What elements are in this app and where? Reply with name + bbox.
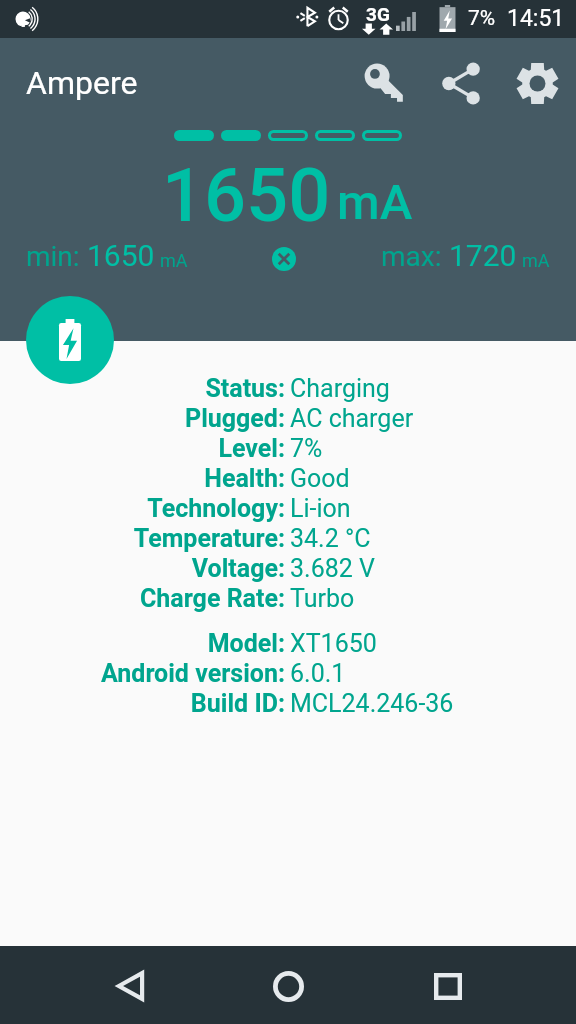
staticText: Ampere	[26, 64, 138, 102]
staticText: 7%	[468, 6, 496, 31]
staticText: Charging	[290, 374, 390, 403]
staticText: 14:51	[507, 5, 565, 32]
staticText: 3G	[366, 3, 390, 25]
button[interactable]: Recents	[408, 958, 488, 1014]
staticText: mA	[160, 250, 188, 271]
staticText: Temperature:	[133, 524, 285, 553]
staticText: 7%	[290, 434, 323, 463]
staticText: Charge Rate:	[139, 584, 285, 613]
staticText: AC charger	[290, 404, 414, 433]
staticText: Level:	[218, 434, 285, 463]
button[interactable]: Home	[248, 958, 328, 1014]
staticText: 34.2 °C	[290, 524, 371, 553]
staticText: Good	[290, 464, 350, 493]
staticText: mA	[522, 250, 550, 271]
staticText: Model:	[207, 629, 285, 658]
staticText: max:	[381, 240, 449, 273]
staticText: Li-ion	[290, 494, 351, 523]
staticText: 1650	[162, 152, 331, 239]
staticText: 1650	[87, 238, 155, 273]
staticText: Turbo	[290, 584, 355, 613]
staticText: min:	[26, 240, 87, 273]
staticText: Health:	[204, 464, 285, 493]
staticText: 1720	[449, 238, 517, 273]
staticText: 3.682 V	[290, 554, 375, 583]
button[interactable]: Back	[88, 958, 168, 1014]
staticText: Status:	[205, 374, 285, 403]
staticText: Android version:	[101, 659, 285, 688]
staticText: Build ID:	[190, 689, 285, 718]
button[interactable]: Measure battery	[26, 296, 114, 384]
button[interactable]: Share	[433, 56, 488, 111]
staticText: MCL24.246-36	[290, 689, 454, 718]
button[interactable]: Settings	[510, 56, 565, 111]
staticText: 6.0.1	[290, 659, 346, 688]
staticText: Technology:	[147, 494, 285, 523]
staticText: mA	[337, 174, 413, 231]
button[interactable]: Unlock	[357, 56, 412, 111]
staticText: Plugged:	[185, 404, 285, 433]
staticText: Voltage:	[191, 554, 285, 583]
staticText: XT1650	[290, 629, 377, 658]
button[interactable]: Reset	[267, 242, 301, 276]
